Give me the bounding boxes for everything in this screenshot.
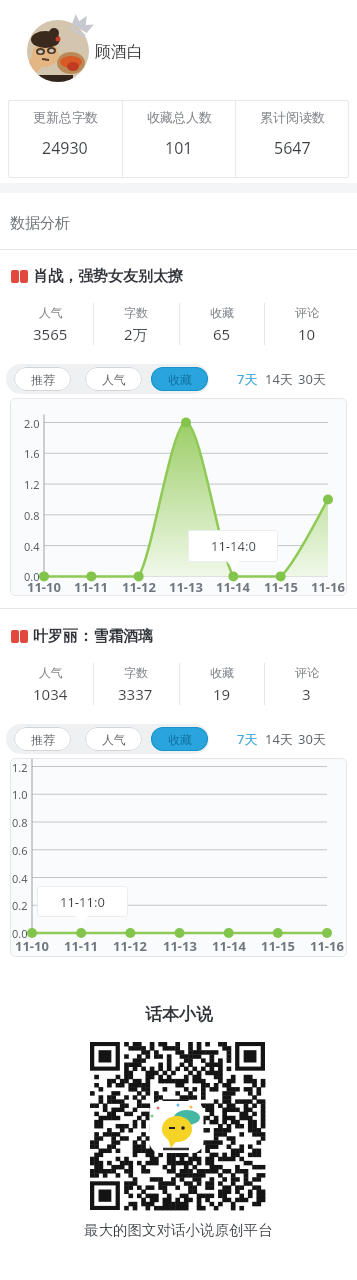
button[interactable]: 推荐 — [14, 367, 71, 391]
staticText: 0.2 — [12, 898, 28, 912]
staticText: 1.2 — [24, 477, 40, 491]
staticText: 11-14:0 — [211, 537, 256, 555]
staticText: 11-16 — [310, 937, 344, 953]
staticText: 0.4 — [12, 871, 28, 885]
button[interactable] — [27, 20, 89, 82]
button[interactable]: 14天 — [261, 369, 296, 389]
staticText: 推荐 — [31, 732, 55, 747]
staticText: 14天 — [265, 370, 293, 388]
staticText: 5647 — [274, 137, 311, 157]
staticText: 11-12 — [122, 578, 156, 594]
staticText: 人气 — [39, 305, 63, 320]
staticText: 11-10 — [15, 937, 49, 953]
button[interactable]: 14天 — [261, 729, 296, 749]
staticText: 11-14 — [216, 578, 250, 594]
staticText: 11-13 — [163, 937, 197, 953]
staticText: 7天 — [237, 730, 258, 748]
staticText: 2万 — [124, 324, 148, 344]
staticText: 3 — [302, 684, 311, 704]
staticText: 1.2 — [12, 760, 28, 774]
staticText: 0.6 — [12, 843, 28, 857]
staticText: 30天 — [298, 370, 326, 388]
button[interactable]: 30天 — [294, 369, 329, 389]
staticText: 2.0 — [24, 416, 40, 430]
button[interactable]: 收藏 — [151, 727, 208, 751]
staticText: 最大的图文对话小说原创平台 — [84, 1221, 273, 1239]
staticText: 11-11 — [74, 578, 108, 594]
staticText: 7天 — [237, 370, 258, 388]
staticText: 11-10 — [27, 578, 61, 594]
staticText: 评论 — [295, 665, 319, 680]
staticText: 人气 — [102, 372, 126, 387]
staticText: 0.0 — [12, 926, 28, 940]
staticText: 19 — [213, 684, 231, 704]
staticText: 11-15 — [264, 578, 298, 594]
staticText: 11-11 — [64, 937, 98, 953]
staticText: 更新总字数 — [33, 109, 98, 125]
staticText: 收藏总人数 — [147, 109, 212, 125]
staticText: 收藏 — [168, 372, 192, 387]
staticText: 3337 — [118, 684, 153, 704]
staticText: 11-13 — [169, 578, 203, 594]
staticText: 11-14 — [212, 937, 246, 953]
staticText: 话本小说 — [145, 1004, 213, 1024]
staticText: 肖战，强势女友别太撩 — [33, 267, 183, 286]
staticText: 字数 — [124, 305, 148, 320]
staticText: 11-11:0 — [60, 893, 105, 911]
staticText: 30天 — [298, 730, 326, 748]
staticText: 累计阅读数 — [260, 109, 325, 125]
staticText: 1034 — [33, 684, 68, 704]
staticText: 1.6 — [24, 446, 40, 460]
staticText: 人气 — [39, 665, 63, 680]
button[interactable]: 推荐 — [14, 727, 71, 751]
staticText: 数据分析 — [10, 214, 70, 232]
staticText: 收藏 — [210, 305, 234, 320]
button[interactable]: 人气 — [85, 367, 142, 391]
staticText: 11-15 — [261, 937, 295, 953]
staticText: 65 — [213, 324, 231, 344]
staticText: 收藏 — [210, 665, 234, 680]
staticText: 101 — [165, 137, 193, 157]
staticText: 字数 — [124, 665, 148, 680]
staticText: 24930 — [42, 137, 88, 157]
staticText: 人气 — [102, 732, 126, 747]
button[interactable]: 收藏 — [151, 367, 208, 391]
staticText: 推荐 — [31, 372, 55, 387]
staticText: 顾酒白 — [95, 42, 143, 60]
staticText: 0.4 — [24, 539, 40, 553]
staticText: 3565 — [33, 324, 68, 344]
staticText: 10 — [298, 324, 316, 344]
staticText: 叶罗丽：雪霜酒璃 — [33, 627, 153, 646]
staticText: 评论 — [295, 305, 319, 320]
staticText: 11-12 — [113, 937, 147, 953]
button[interactable]: 30天 — [294, 729, 329, 749]
button[interactable]: 7天 — [230, 729, 264, 749]
staticText: 14天 — [265, 730, 293, 748]
button[interactable]: 7天 — [230, 369, 264, 389]
staticText: 0.0 — [24, 569, 40, 583]
staticText: 0.8 — [12, 815, 28, 829]
button[interactable]: 人气 — [85, 727, 142, 751]
staticText: 收藏 — [168, 732, 192, 747]
staticText: 11-16 — [311, 578, 345, 594]
staticText: 0.8 — [24, 508, 40, 522]
staticText: 1.0 — [12, 787, 28, 801]
